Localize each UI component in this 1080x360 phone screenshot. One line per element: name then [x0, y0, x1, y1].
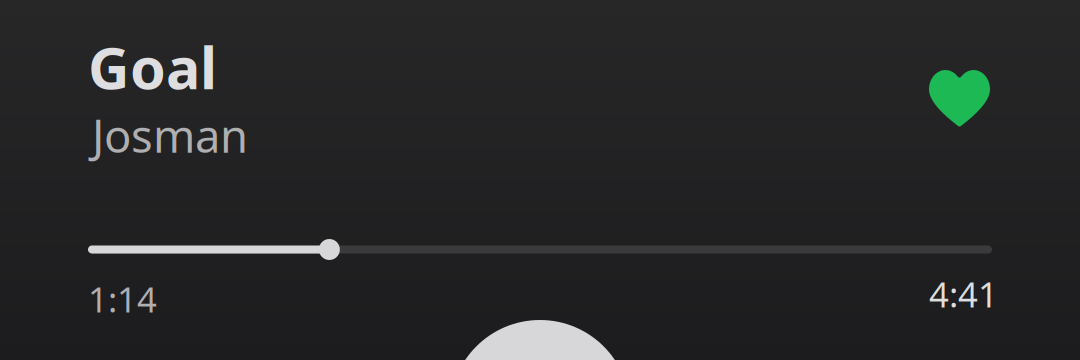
staticText: Josman [92, 105, 248, 165]
button[interactable]: Like [921, 63, 998, 135]
staticText: Goal [88, 29, 217, 105]
button[interactable]: Play [450, 320, 630, 360]
staticText: 4:41 [929, 271, 998, 317]
staticText: 1:14 [88, 276, 157, 322]
button[interactable]: Playback progress [88, 239, 992, 260]
